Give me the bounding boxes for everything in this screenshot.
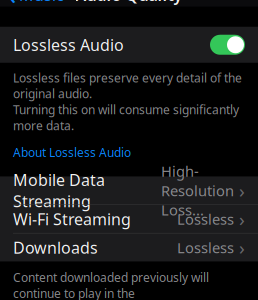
staticText: Wi-Fi Streaming: [13, 208, 131, 229]
staticText: ›: [239, 206, 245, 231]
staticText: Downloads: [13, 237, 98, 258]
staticText: Lossless: [177, 238, 234, 257]
button[interactable]: ‹: [0, 0, 70, 7]
staticText: Content downloaded previously will conti…: [13, 269, 209, 300]
button[interactable]: Wi-Fi Streaming: [0, 205, 258, 233]
staticText: Audio Quality: [75, 0, 182, 5]
button[interactable]: Downloads: [0, 233, 258, 261]
staticText: High-Resolution Loss...: [161, 161, 234, 220]
staticText: ›: [239, 235, 245, 260]
staticText: Lossless Audio: [13, 34, 124, 55]
staticText: About Lossless Audio: [13, 144, 131, 160]
staticText: ‹: [8, 0, 16, 11]
button[interactable]: About Lossless Audio: [13, 133, 131, 160]
button[interactable]: Lossless Audio: [0, 27, 258, 63]
button[interactable]: Mobile Data Streaming: [0, 176, 258, 204]
staticText: Lossless: [177, 209, 234, 229]
staticText: Lossless files preserve every detail of …: [13, 70, 242, 102]
staticText: ›: [239, 178, 245, 203]
staticText: Music: [19, 0, 64, 5]
staticText: Turning this on will consume significant…: [13, 102, 239, 133]
staticText: Mobile Data Streaming: [13, 169, 105, 212]
